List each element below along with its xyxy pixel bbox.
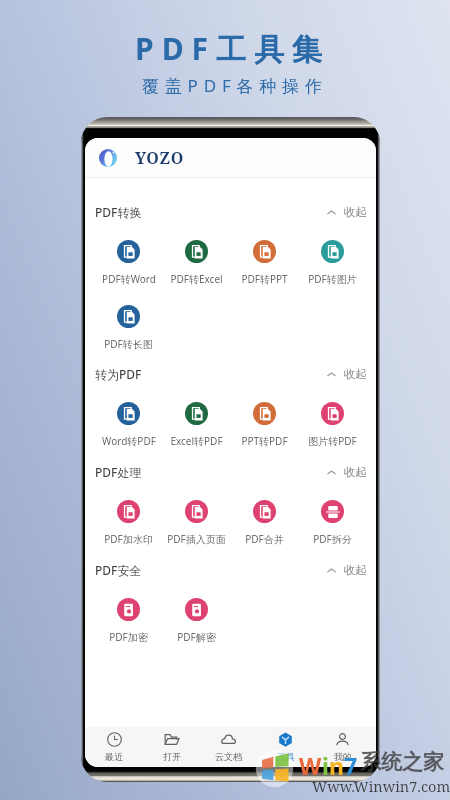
staticText: PDF拆分 [313,532,352,546]
button[interactable]: PDF加密 [95,598,162,644]
button[interactable]: PPT转PDF [230,402,298,448]
button[interactable]: Word转PDF [95,402,162,448]
button[interactable]: PDF合并 [230,500,298,546]
staticText: PDF转Excel [170,272,223,286]
button[interactable]: PDF转长图 [95,305,162,351]
button[interactable]: 收起 [324,560,370,580]
staticText: PPT转PDF [241,434,288,448]
staticText: 覆盖PDF各种操作 [142,74,328,97]
staticText: PDF加密 [109,630,148,644]
staticText: PDF安全 [95,562,142,578]
staticText: Www.Winwin7.com [312,776,450,796]
other: 云文档 [221,732,236,747]
staticText: PDF转PPT [241,272,288,286]
button[interactable]: 收起 [324,462,370,482]
staticText: PDF转Word [102,272,156,286]
button[interactable]: 打开 [143,732,200,762]
staticText: PDF解密 [177,630,216,644]
staticText: PDF转换 [95,204,142,220]
staticText: W [299,750,322,781]
button[interactable]: PDF解密 [162,598,230,644]
button[interactable]: PDF加水印 [95,500,162,546]
staticText: PDF处理 [95,464,142,480]
staticText: 收起 [344,465,367,479]
staticText: 7 [344,750,358,781]
staticText: PDF转长图 [104,337,153,351]
staticText: 云文档 [215,751,242,762]
button[interactable]: 图片转PDF [298,402,366,448]
button[interactable]: 最近 [85,732,143,762]
staticText: 转为PDF [95,366,142,382]
staticText: 图片转PDF [308,434,357,448]
button[interactable]: PDF转Word [95,240,162,286]
staticText: 收起 [344,563,367,577]
button[interactable]: 收起 [324,364,370,384]
button[interactable]: 我的 [314,732,371,762]
staticText: Excel转PDF [170,434,223,448]
button[interactable]: 收起 [324,202,370,222]
button[interactable]: PDF转图片 [298,240,366,286]
button[interactable]: PDF插入页面 [162,500,230,546]
staticText: n [329,750,344,781]
staticText: 工具 [277,751,295,762]
staticText: 最近 [105,751,123,762]
other: 工具 [278,732,293,747]
button[interactable]: PDF拆分 [298,500,366,546]
button[interactable]: 云文档 [200,732,257,762]
staticText: Word转PDF [102,434,156,448]
other: 最近 [107,732,122,747]
staticText: YOZO [135,147,184,169]
staticText: 打开 [163,751,181,762]
other: 打开 [164,732,179,747]
staticText: PDF插入页面 [167,532,226,546]
staticText: PDF加水印 [104,532,153,546]
button[interactable]: 工具 [257,732,314,762]
staticText: PDF工具集 [135,28,331,69]
button[interactable]: Excel转PDF [162,402,230,448]
staticText: 我的 [334,751,352,762]
button[interactable]: PDF转Excel [162,240,230,286]
staticText: 收起 [344,205,367,219]
staticText: i [322,750,329,781]
staticText: 系统之家 [360,749,444,775]
other: 我的 [335,732,350,747]
staticText: 收起 [344,367,367,381]
button[interactable]: PDF转PPT [230,240,298,286]
staticText: PDF合并 [245,532,284,546]
staticText: PDF转图片 [308,272,357,286]
